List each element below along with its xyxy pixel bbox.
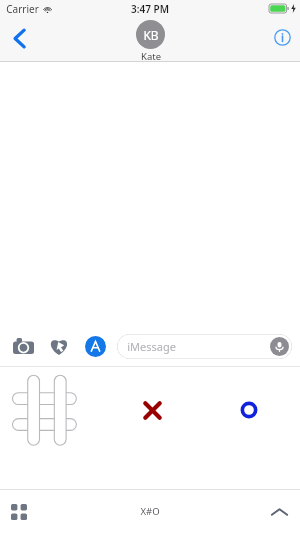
staticText: KB — [143, 27, 159, 43]
staticText: Kate — [141, 50, 161, 62]
staticText: Carrier — [6, 2, 39, 16]
button[interactable]: Dictate — [270, 337, 289, 356]
button[interactable]: Back — [4, 23, 34, 53]
staticText: iMessage — [127, 339, 176, 354]
button[interactable]: Camera — [8, 331, 38, 361]
button[interactable]: Digital Touch — [44, 331, 74, 361]
staticText: 3:47 PM — [131, 2, 169, 16]
button[interactable]: O sticker — [228, 389, 270, 431]
button[interactable]: All apps — [3, 496, 35, 528]
button[interactable]: X sticker — [131, 389, 173, 431]
button[interactable]: Details — [269, 24, 295, 50]
button[interactable]: iMessage — [117, 334, 292, 359]
staticText: X#O — [140, 505, 160, 518]
button[interactable]: Grid sticker — [8, 370, 90, 452]
button[interactable]: App Store — [80, 331, 110, 361]
button[interactable]: KB — [136, 20, 165, 62]
button[interactable]: Expand — [264, 497, 294, 527]
